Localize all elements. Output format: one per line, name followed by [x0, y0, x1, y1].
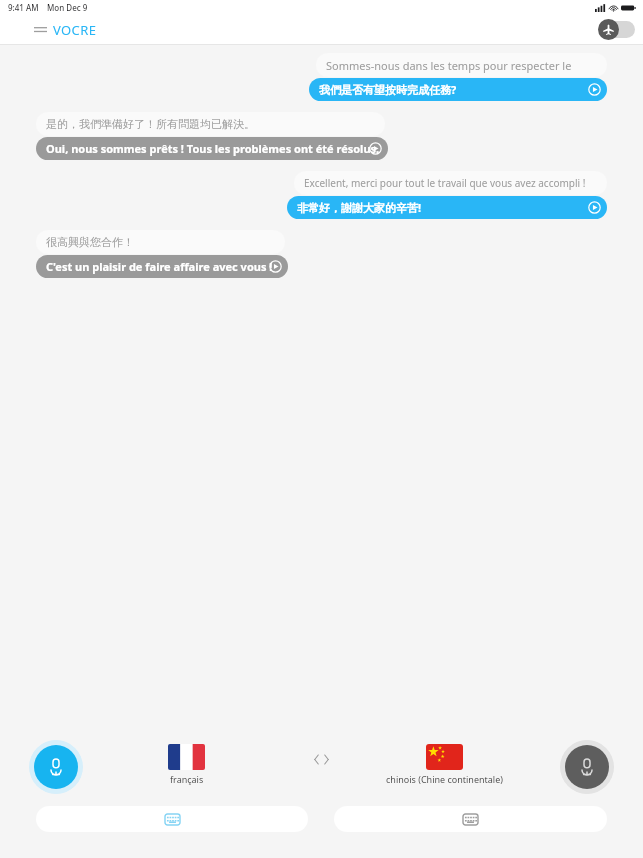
button[interactable]: Airplane mode toggle	[599, 21, 635, 38]
staticText: 很高興與您合作！	[46, 235, 134, 249]
button[interactable]: chinois (Chine continentale)	[386, 744, 503, 785]
button[interactable]: Oui, nous sommes prêts ! Tous les problè…	[36, 137, 388, 160]
staticText: Excellent, merci pour tout le travail qu…	[304, 176, 586, 190]
button[interactable]: Type a message	[334, 806, 607, 832]
button[interactable]: Type a message	[36, 806, 308, 832]
button[interactable]: Speak Chinese	[560, 740, 614, 794]
button[interactable]: 很高興與您合作！	[36, 230, 285, 254]
button[interactable]: Excellent, merci pour tout le travail qu…	[294, 171, 607, 195]
button[interactable]: Speak French	[29, 740, 83, 794]
button[interactable]: C'est un plaisir de faire affaire avec v…	[36, 255, 288, 278]
other: Play audio	[588, 201, 601, 214]
button[interactable]: Sommes-nous dans les temps pour respecte…	[316, 53, 607, 77]
staticText: C'est un plaisir de faire affaire avec v…	[46, 259, 273, 274]
staticText: 我們是否有望按時完成任務?	[319, 82, 457, 97]
button[interactable]: Swap languages	[310, 751, 333, 768]
staticText: Mon Dec 9	[47, 2, 88, 13]
staticText: français	[170, 773, 204, 785]
staticText: 非常好，謝謝大家的辛苦!	[297, 200, 422, 215]
button[interactable]: Menu	[30, 21, 51, 38]
other: Play audio	[588, 83, 601, 96]
button[interactable]: 我們是否有望按時完成任務?	[309, 78, 607, 101]
staticText: 9:41 AM	[8, 2, 39, 13]
staticText: chinois (Chine continentale)	[386, 773, 503, 785]
other: Play audio	[269, 260, 282, 273]
button[interactable]: français	[168, 744, 205, 785]
button[interactable]: 非常好，謝謝大家的辛苦!	[287, 196, 607, 219]
button[interactable]: 是的，我們準備好了！所有問題均已解決。	[36, 112, 385, 136]
other: Play audio	[369, 142, 382, 155]
staticText: Sommes-nous dans les temps pour respecte…	[326, 58, 597, 73]
staticText: 是的，我們準備好了！所有問題均已解決。	[46, 117, 255, 131]
staticText: Oui, nous sommes prêts ! Tous les problè…	[46, 141, 380, 156]
staticText: VOCRE	[53, 21, 97, 39]
